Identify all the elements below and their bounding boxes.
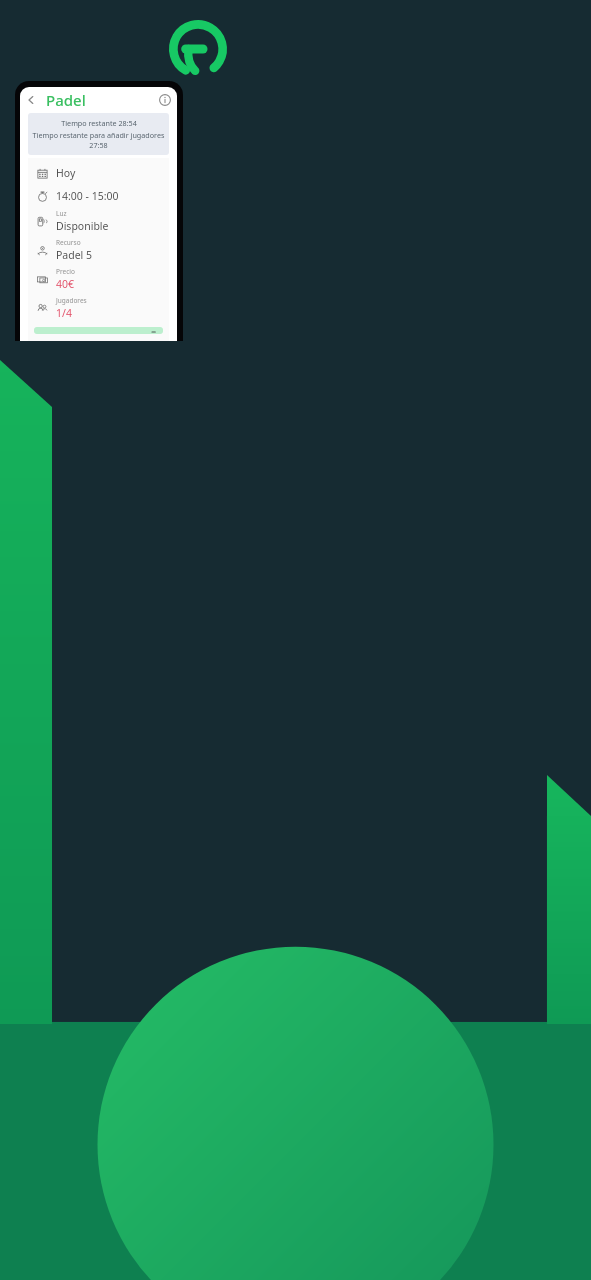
- staticText: Padel: [46, 90, 86, 110]
- staticText: Tiempo restante 28:54: [61, 118, 137, 128]
- other: App logo: [170, 21, 226, 77]
- staticText: Jugadores: [56, 296, 87, 305]
- button[interactable]: Para que la reserva sea efectiva es obli…: [34, 327, 163, 334]
- staticText: Hoy: [56, 166, 76, 180]
- staticText: Disponible: [56, 219, 109, 233]
- staticText: Recurso: [56, 238, 81, 247]
- staticText: 1/4: [56, 306, 72, 320]
- button[interactable]: Information: [153, 88, 177, 112]
- staticText: 14:00 - 15:00: [56, 189, 119, 203]
- staticText: Tiempo restante para añadir jugadores 27…: [32, 130, 165, 150]
- staticText: Luz: [56, 209, 67, 218]
- button[interactable]: Back: [20, 89, 42, 111]
- staticText: Precio: [56, 267, 75, 276]
- staticText: 40€: [56, 277, 75, 291]
- staticText: Padel 5: [56, 248, 93, 262]
